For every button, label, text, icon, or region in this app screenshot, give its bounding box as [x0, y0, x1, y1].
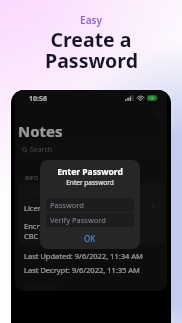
staticText: License — [24, 203, 51, 213]
staticText: Enter Password — [57, 166, 123, 178]
button[interactable]: Search — [18, 142, 164, 158]
staticText: Notes — [18, 121, 63, 141]
staticText: CBC — [24, 231, 39, 241]
staticText: Enter password — [66, 178, 114, 187]
staticText: Password — [50, 200, 84, 210]
staticText: INFO — [25, 174, 39, 181]
button[interactable]: Password — [46, 198, 134, 212]
staticText: Change Password — [24, 187, 87, 197]
staticText: Verify Password — [50, 215, 106, 225]
staticText: Password — [45, 47, 138, 74]
staticText: Search — [30, 145, 53, 155]
button[interactable]: License — [18, 202, 165, 222]
staticText: Easy — [80, 13, 102, 27]
button[interactable]: OK — [74, 232, 106, 245]
staticText: 10:56 — [29, 94, 47, 104]
staticText: Last Updated: 9/6/2022, 11:34 AM — [24, 251, 143, 261]
staticText: OK — [84, 233, 96, 244]
staticText: Create a — [50, 26, 132, 53]
staticText: Encryption — [24, 221, 62, 231]
button[interactable]: Verify Password — [46, 213, 134, 227]
staticText: Last Decrypt: 9/6/2022, 11:35 AM — [24, 265, 140, 275]
